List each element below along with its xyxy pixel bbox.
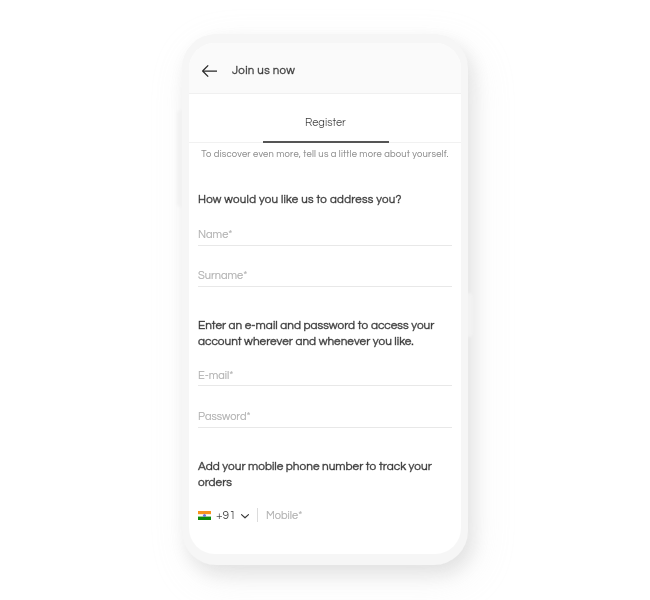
staticText: Password* xyxy=(198,411,251,422)
staticText: Register xyxy=(305,117,346,128)
button[interactable]: Register xyxy=(287,115,364,130)
staticText: Mobile* xyxy=(266,510,303,521)
staticText: Name* xyxy=(198,229,233,240)
staticText: Join us now xyxy=(232,65,461,77)
staticText: To discover even more, tell us a little … xyxy=(189,149,461,159)
button[interactable]: +91 xyxy=(198,508,452,522)
staticText: Enter an e-mail and password to access y… xyxy=(198,319,452,347)
staticText: How would you like us to address you? xyxy=(198,194,452,206)
staticText: Enter an e-mail and password to access y… xyxy=(198,319,452,347)
staticText: Add your mobile phone number to track yo… xyxy=(198,460,452,488)
button[interactable]: Back xyxy=(194,56,224,86)
staticText: How would you like us to address you? xyxy=(198,194,452,206)
staticText: Add your mobile phone number to track yo… xyxy=(198,460,452,488)
staticText: Join us now xyxy=(232,65,461,77)
staticText: +91 xyxy=(216,509,236,521)
staticText: Surname* xyxy=(198,270,248,281)
staticText: E-mail* xyxy=(198,370,234,381)
